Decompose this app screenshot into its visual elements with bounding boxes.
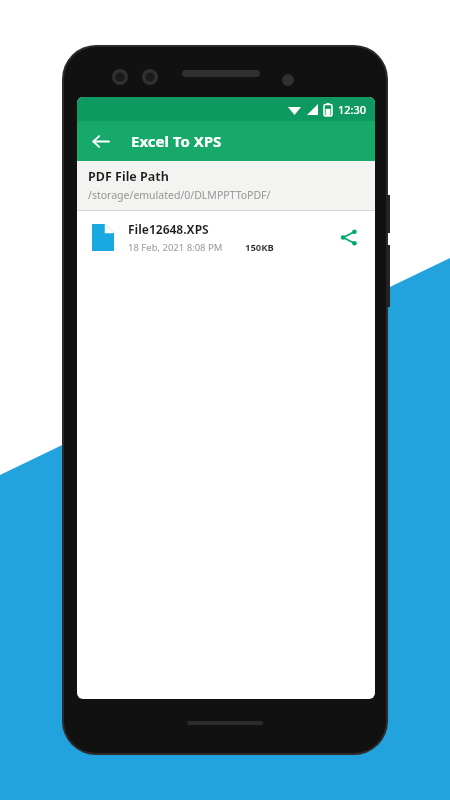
staticText: 150KB: [245, 241, 274, 254]
staticText: PDF File Path: [88, 168, 169, 185]
staticText: File12648.XPS: [128, 221, 209, 237]
staticText: 18 Feb, 2021 8:08 PM: [128, 241, 223, 254]
button[interactable]: Back: [83, 124, 117, 158]
button[interactable]: Share: [329, 218, 367, 256]
staticText: /storage/emulated/0/DLMPPTToPDF/: [88, 188, 271, 202]
staticText: Excel To XPS: [131, 131, 222, 151]
staticText: 12:30: [338, 102, 367, 117]
button[interactable]: File12648.XPS: [77, 211, 375, 263]
